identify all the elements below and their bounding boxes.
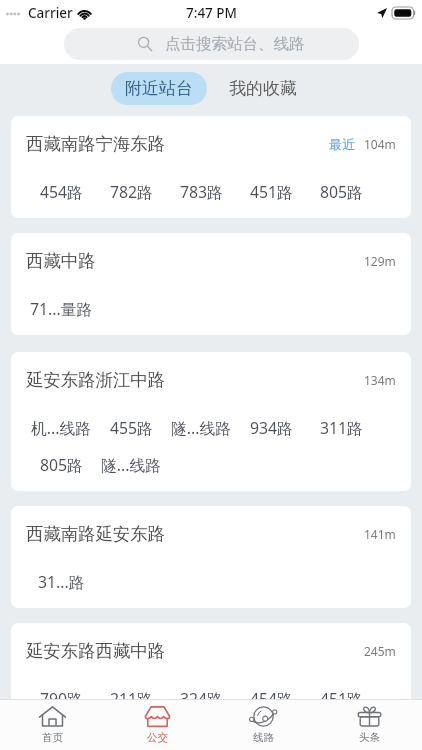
staticText: 134m — [364, 372, 396, 388]
staticText: 141m — [364, 526, 396, 542]
button[interactable]: 附近站台 — [111, 72, 207, 105]
staticText: 西藏中路 — [26, 250, 364, 272]
staticText: 隧...线路 — [171, 417, 232, 439]
staticText: 790路 — [40, 688, 83, 710]
staticText: 324路 — [180, 688, 223, 710]
button[interactable]: Routes — [210, 700, 316, 750]
button[interactable]: 我的收藏 — [215, 72, 311, 105]
staticText: 隧...线路 — [101, 454, 162, 476]
staticText: 西藏南路延安东路 — [26, 523, 364, 545]
button[interactable]: 西藏南路延安东路 — [11, 506, 411, 608]
staticText: 311路 — [320, 417, 363, 439]
staticText: 附近站台 — [125, 78, 193, 99]
button[interactable]: 点击搜索站台、线路 — [64, 28, 359, 60]
staticText: 451路 — [320, 688, 363, 710]
staticText: 头条 — [359, 731, 380, 744]
staticText: 245m — [364, 643, 396, 659]
staticText: 451路 — [250, 181, 293, 203]
other: News — [356, 706, 383, 727]
staticText: 31...路 — [38, 571, 85, 593]
button[interactable]: 延安东路西藏中路 — [11, 623, 411, 725]
staticText: 7:47 PM — [186, 4, 237, 22]
staticText: 我的收藏 — [229, 78, 297, 99]
staticText: 782路 — [110, 181, 153, 203]
staticText: 805路 — [40, 454, 83, 476]
button[interactable]: Home — [0, 700, 105, 750]
button[interactable]: 西藏中路 — [11, 233, 411, 335]
button[interactable]: News — [316, 700, 422, 750]
staticText: Carrier — [28, 4, 73, 22]
staticText: 公交 — [147, 731, 168, 744]
staticText: 最近 — [329, 136, 355, 152]
staticText: 西藏南路宁海东路 — [26, 133, 329, 155]
other: Home — [39, 706, 66, 727]
other: Routes — [250, 706, 277, 727]
staticText: 线路 — [253, 731, 274, 744]
staticText: 延安东路浙江中路 — [26, 369, 364, 391]
staticText: 783路 — [180, 181, 223, 203]
staticText: 805路 — [320, 181, 363, 203]
staticText: 129m — [364, 253, 396, 269]
button[interactable]: 西藏南路宁海东路 — [11, 116, 411, 218]
staticText: 71...量路 — [30, 298, 93, 320]
staticText: 机...线路 — [31, 417, 92, 439]
staticText: 454路 — [250, 688, 293, 710]
staticText: 延安东路西藏中路 — [26, 640, 364, 662]
other: Bus — [144, 706, 171, 727]
staticText: 934路 — [250, 417, 293, 439]
staticText: 点击搜索站台、线路 — [165, 34, 305, 54]
button[interactable]: Bus — [105, 700, 210, 750]
staticText: 首页 — [42, 731, 63, 744]
staticText: 454路 — [40, 181, 83, 203]
staticText: 211路 — [110, 688, 153, 710]
button[interactable]: 延安东路浙江中路 — [11, 352, 411, 491]
staticText: 455路 — [110, 417, 153, 439]
staticText: 104m — [364, 136, 396, 152]
